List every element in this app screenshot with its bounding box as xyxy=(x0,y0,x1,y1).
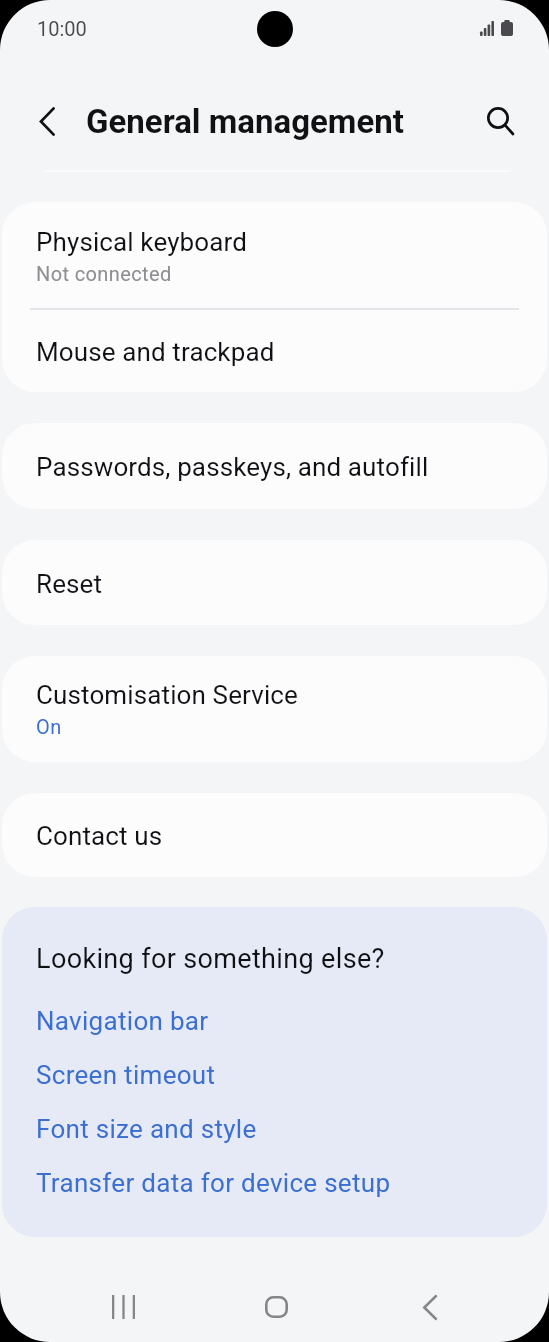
button[interactable]: Passwords, passkeys, and autofill xyxy=(2,423,547,509)
button[interactable]: Home xyxy=(234,1265,318,1342)
button[interactable]: Navigation bar xyxy=(36,994,513,1048)
staticText: Font size and style xyxy=(36,1114,257,1144)
button[interactable]: Navigate up xyxy=(21,95,73,147)
staticText: Contact us xyxy=(36,821,163,851)
staticText: Passwords, passkeys, and autofill xyxy=(36,452,429,482)
staticText: Not connected xyxy=(36,262,172,285)
button[interactable]: Mouse and trackpad xyxy=(2,310,547,392)
button[interactable]: Recent apps xyxy=(81,1265,165,1342)
button[interactable]: Physical keyboard xyxy=(2,202,547,308)
staticText: Mouse and trackpad xyxy=(36,337,275,367)
staticText: On xyxy=(36,715,62,738)
staticText: Looking for something else? xyxy=(36,943,385,975)
staticText: Screen timeout xyxy=(36,1060,216,1090)
button[interactable]: Customisation Service xyxy=(2,656,547,762)
staticText: Reset xyxy=(36,569,103,599)
staticText: Customisation Service xyxy=(36,680,298,710)
staticText: General management xyxy=(86,102,404,141)
staticText: Navigation bar xyxy=(36,1006,209,1036)
button[interactable]: Contact us xyxy=(2,793,547,877)
button[interactable]: Transfer data for device setup xyxy=(36,1156,513,1210)
button[interactable]: Screen timeout xyxy=(36,1048,513,1102)
staticText: 10:00 xyxy=(37,17,87,40)
button[interactable]: Font size and style xyxy=(36,1102,513,1156)
staticText: Transfer data for device setup xyxy=(36,1168,391,1198)
button[interactable]: Back xyxy=(388,1265,472,1342)
button[interactable]: Search xyxy=(471,95,523,147)
button[interactable]: Reset xyxy=(2,540,547,625)
staticText: Physical keyboard xyxy=(36,227,247,257)
